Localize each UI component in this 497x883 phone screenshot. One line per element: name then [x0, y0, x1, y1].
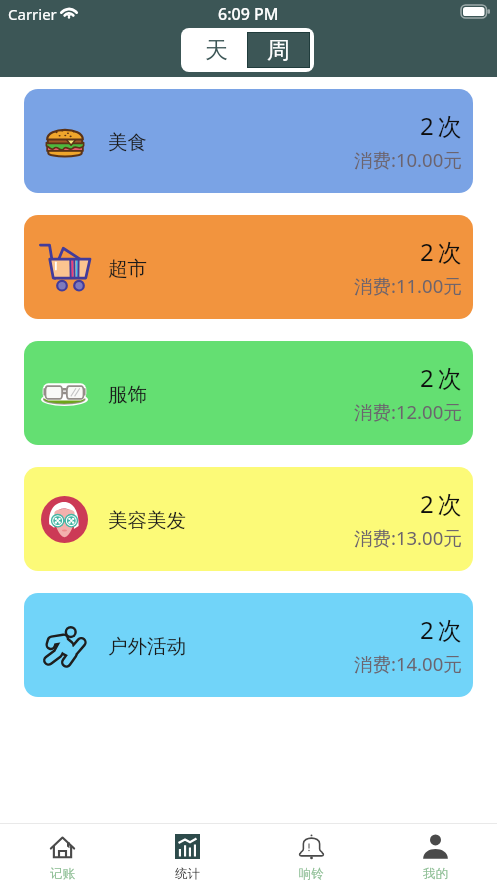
- staticText: 6:09 PM: [218, 3, 279, 25]
- staticText: 2 次: [420, 235, 462, 268]
- staticText: 响铃: [299, 866, 324, 882]
- button[interactable]: 服饰: [24, 341, 473, 445]
- staticText: 统计: [175, 866, 200, 882]
- staticText: 消费:13.00元: [354, 525, 462, 550]
- staticText: 记账: [50, 866, 75, 882]
- staticText: 消费:11.00元: [354, 273, 462, 298]
- staticText: 我的: [423, 866, 448, 882]
- staticText: 2 次: [420, 109, 462, 142]
- staticText: 美容美发: [108, 508, 186, 533]
- staticText: 周: [267, 36, 290, 65]
- staticText: 服饰: [108, 382, 147, 407]
- staticText: 消费:12.00元: [354, 399, 462, 424]
- staticText: 2 次: [420, 613, 462, 646]
- staticText: 消费:10.00元: [354, 147, 462, 172]
- button[interactable]: 美容美发: [24, 467, 473, 571]
- button[interactable]: 美食: [24, 89, 473, 193]
- staticText: 超市: [108, 256, 147, 281]
- staticText: 2 次: [420, 487, 462, 520]
- button[interactable]: 超市: [24, 215, 473, 319]
- staticText: 天: [205, 36, 228, 65]
- button[interactable]: 我的: [373, 824, 497, 883]
- staticText: 消费:14.00元: [354, 651, 462, 676]
- staticText: Carrier: [8, 4, 57, 24]
- staticText: 户外活动: [108, 634, 186, 659]
- staticText: 美食: [108, 130, 147, 155]
- button[interactable]: 记账: [0, 824, 125, 883]
- staticText: 2 次: [420, 361, 462, 394]
- button[interactable]: 响铃: [249, 824, 373, 883]
- button[interactable]: 户外活动: [24, 593, 473, 697]
- button[interactable]: 统计: [125, 824, 249, 883]
- button[interactable]: 天: [185, 32, 247, 68]
- button[interactable]: 周: [248, 33, 309, 67]
